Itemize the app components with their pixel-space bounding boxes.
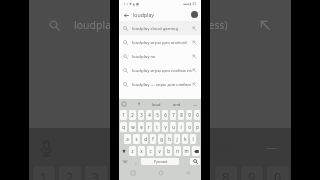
staticText: j: [176, 136, 178, 142]
button[interactable]: y: [162, 122, 168, 132]
button[interactable]: 2: [129, 110, 136, 120]
button[interactable]: 8: [178, 110, 184, 120]
staticText: u: [172, 124, 175, 130]
button[interactable]: ,: [132, 158, 139, 165]
staticText: x: [140, 148, 143, 154]
button[interactable]: w: [129, 122, 136, 132]
button[interactable]: Search: [190, 158, 200, 165]
button[interactable]: 5: [154, 110, 160, 120]
button[interactable]: Voice input: [137, 102, 141, 106]
button[interactable]: loudplay пк: [119, 49, 201, 63]
button[interactable]: m: [183, 146, 190, 156]
staticText: l: [192, 136, 194, 142]
button[interactable]: 4: [146, 110, 152, 120]
button[interactable]: q: [120, 122, 127, 132]
staticText: !#1: [123, 160, 128, 164]
button[interactable]: u: [170, 122, 176, 132]
staticText: loud: [152, 102, 161, 107]
button[interactable]: Home: [147, 165, 174, 180]
button[interactable]: Emoji: [122, 102, 126, 106]
button[interactable]: s: [133, 134, 140, 144]
button[interactable]: !#1: [120, 158, 130, 165]
staticText: 1: [122, 112, 125, 118]
button[interactable]: i: [178, 122, 184, 132]
button[interactable]: 9: [186, 110, 192, 120]
button[interactable]: n: [174, 146, 181, 156]
staticText: y: [164, 124, 167, 130]
staticText: 2: [66, 168, 74, 180]
button[interactable]: 0: [194, 110, 200, 120]
staticText: n: [176, 148, 179, 154]
staticText: 5: [156, 112, 159, 118]
staticText: 9: [248, 168, 256, 180]
button[interactable]: loudplay игры для слабых пк: [119, 63, 201, 77]
staticText: e: [140, 124, 143, 130]
staticText: and: [173, 102, 181, 107]
button[interactable]: loudplay cloud gaming: [119, 21, 201, 35]
staticText: q: [122, 124, 125, 130]
staticText: loudplay пк: [132, 53, 156, 59]
staticText: m: [184, 148, 189, 154]
button[interactable]: Account: [191, 11, 198, 18]
staticText: 2: [131, 112, 134, 118]
staticText: loudplay cloud gaming: [132, 25, 179, 31]
staticText: h: [168, 136, 171, 142]
staticText: w: [131, 124, 135, 130]
staticText: 9: [188, 112, 191, 118]
button[interactable]: g: [158, 134, 164, 144]
button[interactable]: Back: [122, 11, 130, 19]
staticText: loudplay: [133, 11, 154, 18]
button[interactable]: t: [154, 122, 160, 132]
button[interactable]: loudplay — игры для слабых: [119, 77, 201, 91]
button[interactable]: r: [146, 122, 152, 132]
button[interactable]: 6: [162, 110, 168, 120]
button[interactable]: f: [150, 134, 156, 144]
staticText: 0: [196, 112, 199, 118]
button[interactable]: h: [166, 134, 172, 144]
staticText: p: [196, 124, 199, 130]
staticText: c: [149, 148, 152, 154]
staticText: ,: [135, 159, 137, 165]
button[interactable]: l: [190, 134, 196, 144]
button[interactable]: c: [147, 146, 154, 156]
staticText: loudplay игры для android: [132, 39, 187, 45]
button[interactable]: o: [186, 122, 192, 132]
staticText: ↑↓ ▼ ▲ ■: [123, 2, 139, 6]
staticText: i: [180, 124, 182, 130]
button[interactable]: z: [129, 146, 136, 156]
button[interactable]: a: [124, 134, 131, 144]
button[interactable]: Backspace: [192, 146, 200, 156]
button[interactable]: .: [181, 158, 188, 165]
staticText: g: [160, 136, 163, 142]
button[interactable]: Русский: [141, 158, 179, 165]
staticText: f: [152, 136, 154, 142]
button[interactable]: 3: [138, 110, 144, 120]
button[interactable]: Recents: [119, 165, 147, 180]
staticText: —: [193, 102, 197, 107]
staticText: r: [148, 124, 150, 130]
button[interactable]: p: [194, 122, 200, 132]
button[interactable]: v: [156, 146, 163, 156]
button[interactable]: x: [138, 146, 145, 156]
button[interactable]: k: [182, 134, 188, 144]
staticText: k: [184, 136, 187, 142]
button[interactable]: loudplay игры для android: [119, 35, 201, 49]
staticText: d: [144, 136, 147, 142]
staticText: v: [158, 148, 161, 154]
staticText: 8: [180, 112, 183, 118]
button[interactable]: Shift: [120, 146, 127, 156]
staticText: 0: [274, 168, 282, 180]
staticText: 6: [164, 112, 167, 118]
staticText: b: [167, 148, 170, 154]
button[interactable]: 1: [120, 110, 127, 120]
button[interactable]: d: [142, 134, 148, 144]
button[interactable]: b: [165, 146, 172, 156]
button[interactable]: e: [138, 122, 144, 132]
button[interactable]: j: [174, 134, 180, 144]
button[interactable]: 7: [170, 110, 176, 120]
staticText: loudplay игры для слабых пк: [132, 67, 192, 73]
